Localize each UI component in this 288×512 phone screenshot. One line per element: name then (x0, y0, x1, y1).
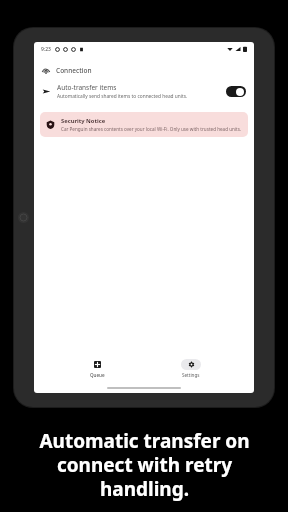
staticText: Automatically send shared items to conne… (57, 93, 188, 100)
staticText: 9:23 (41, 46, 51, 53)
button[interactable]: Security Notice (40, 112, 248, 137)
button[interactable]: Toggle auto-transfer (226, 86, 246, 97)
staticText: Car Penguin shares contents over your lo… (61, 126, 242, 132)
staticText: Queue (90, 372, 105, 378)
button[interactable]: Auto-transfer items (34, 79, 254, 104)
other: Queue (94, 361, 101, 368)
staticText: Automatic transfer on connect with retry… (39, 428, 250, 501)
button[interactable]: Settings (161, 359, 221, 378)
button[interactable]: Queue (67, 359, 127, 378)
staticText: Security Notice (61, 117, 106, 125)
other: Settings (188, 361, 195, 368)
staticText: Connection (56, 66, 92, 75)
staticText: Auto-transfer items (57, 83, 117, 92)
staticText: Settings (182, 372, 200, 378)
